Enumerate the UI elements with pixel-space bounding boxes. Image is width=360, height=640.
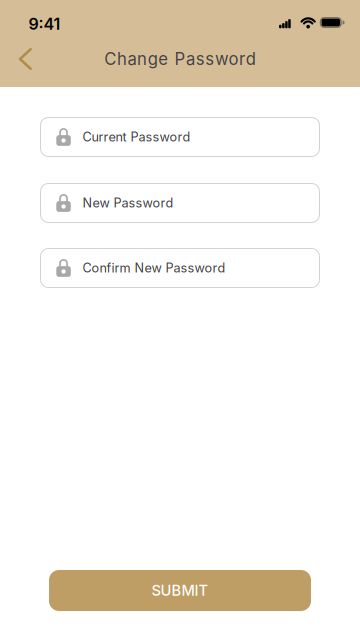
staticText: Current Password bbox=[82, 129, 190, 145]
button[interactable]: New Password bbox=[40, 183, 320, 223]
staticText: SUBMIT bbox=[151, 582, 208, 599]
staticText: New Password bbox=[82, 195, 173, 211]
staticText: Change Password bbox=[104, 49, 256, 69]
staticText: Confirm New Password bbox=[82, 260, 225, 276]
staticText: 9:41 bbox=[28, 14, 60, 34]
button[interactable]: Back bbox=[0, 42, 43, 78]
button[interactable]: SUBMIT bbox=[49, 570, 311, 611]
button[interactable]: Current Password bbox=[40, 117, 320, 157]
button[interactable]: Confirm New Password bbox=[40, 248, 320, 288]
